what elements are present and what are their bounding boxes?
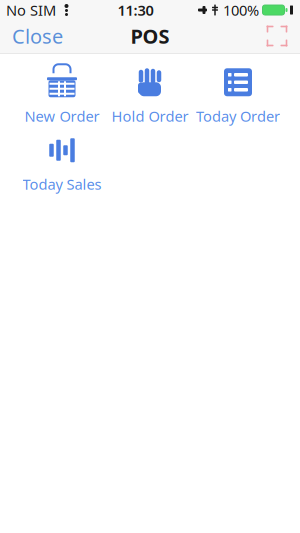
staticText: Hold Order <box>111 106 188 126</box>
staticText: POS <box>130 23 169 49</box>
staticText: Today Order <box>196 106 280 126</box>
button[interactable]: Close <box>2 20 73 52</box>
button[interactable]: Today Order <box>194 64 282 126</box>
staticText: No SIM <box>6 0 56 20</box>
staticText: Close <box>12 23 63 49</box>
button[interactable]: Hold Order <box>106 64 194 126</box>
button[interactable]: New Order <box>18 64 106 126</box>
staticText: 100% <box>223 0 259 20</box>
staticText: 11:30 <box>117 0 153 20</box>
button[interactable]: Today Sales <box>18 132 106 194</box>
button[interactable]: Scan barcode <box>256 20 298 52</box>
staticText: New Order <box>24 106 99 126</box>
staticText: Today Sales <box>22 174 101 194</box>
